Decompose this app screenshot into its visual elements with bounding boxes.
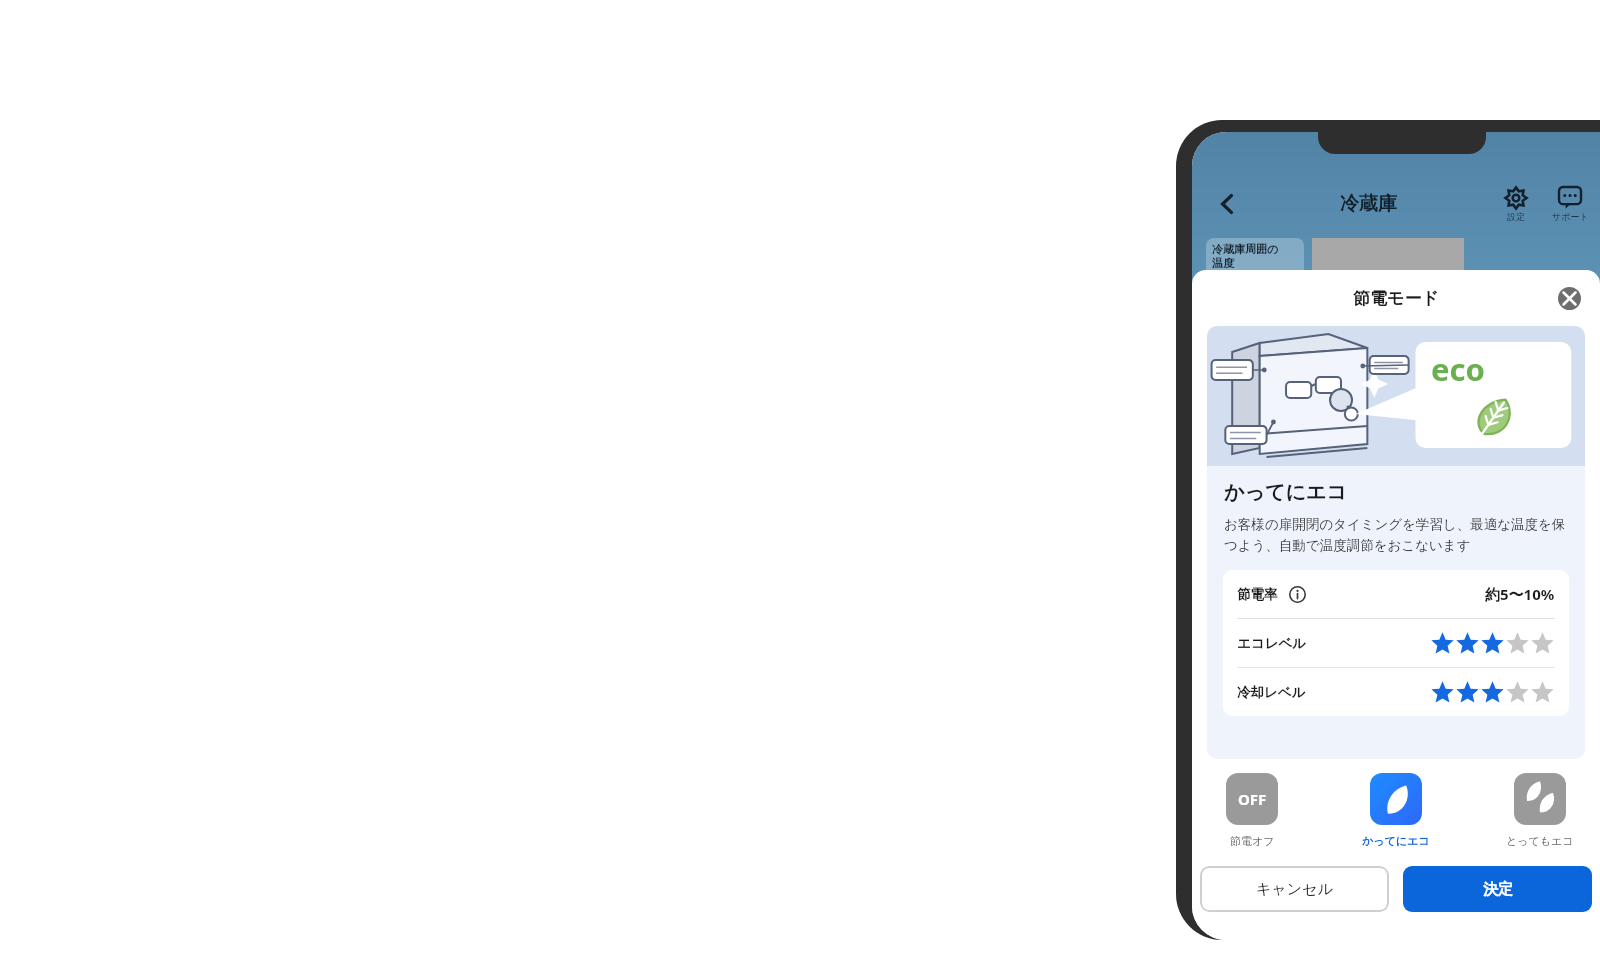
staticText: エコレベル xyxy=(1237,635,1307,652)
staticText: eco xyxy=(1431,348,1485,390)
staticText: サポート xyxy=(1552,211,1589,222)
staticText: 冷蔵庫周囲の 温度 xyxy=(1212,242,1279,270)
staticText: かってにエコ xyxy=(1224,480,1347,505)
button[interactable]: 閉じる xyxy=(1552,281,1586,315)
button[interactable]: サポート xyxy=(1548,187,1592,222)
button[interactable]: 節電率の説明 xyxy=(1287,584,1307,604)
staticText: 節電モード xyxy=(1353,288,1439,309)
button[interactable]: 設定 xyxy=(1494,187,1538,222)
button[interactable]: 冷蔵庫周囲の 温度 xyxy=(1206,238,1304,284)
staticText: かってにエコ xyxy=(1362,834,1430,848)
staticText: 約5〜10% xyxy=(1485,584,1555,604)
staticText: 設定 xyxy=(1507,211,1525,222)
staticText: 節電率 xyxy=(1237,586,1278,603)
button[interactable]: OFF xyxy=(1210,773,1294,848)
button[interactable]: かってにエコ xyxy=(1354,773,1438,848)
button[interactable]: 戻る xyxy=(1210,187,1244,221)
staticText: 冷蔵庫 xyxy=(1340,192,1397,216)
staticText: キャンセル xyxy=(1256,880,1333,899)
button[interactable] xyxy=(1312,238,1464,284)
staticText: 決定 xyxy=(1483,880,1513,899)
button[interactable]: とってもエコ xyxy=(1498,773,1582,848)
button[interactable]: キャンセル xyxy=(1200,866,1389,912)
staticText: お客様の扉開閉のタイミングを学習し、最適な温度を保つよう、自動で温度調節をおこな… xyxy=(1224,516,1568,554)
staticText: とってもエコ xyxy=(1506,834,1574,848)
staticText: OFF xyxy=(1238,789,1267,809)
button[interactable]: 決定 xyxy=(1403,866,1592,912)
staticText: 冷却レベル xyxy=(1237,684,1306,701)
staticText: 節電オフ xyxy=(1230,834,1275,848)
